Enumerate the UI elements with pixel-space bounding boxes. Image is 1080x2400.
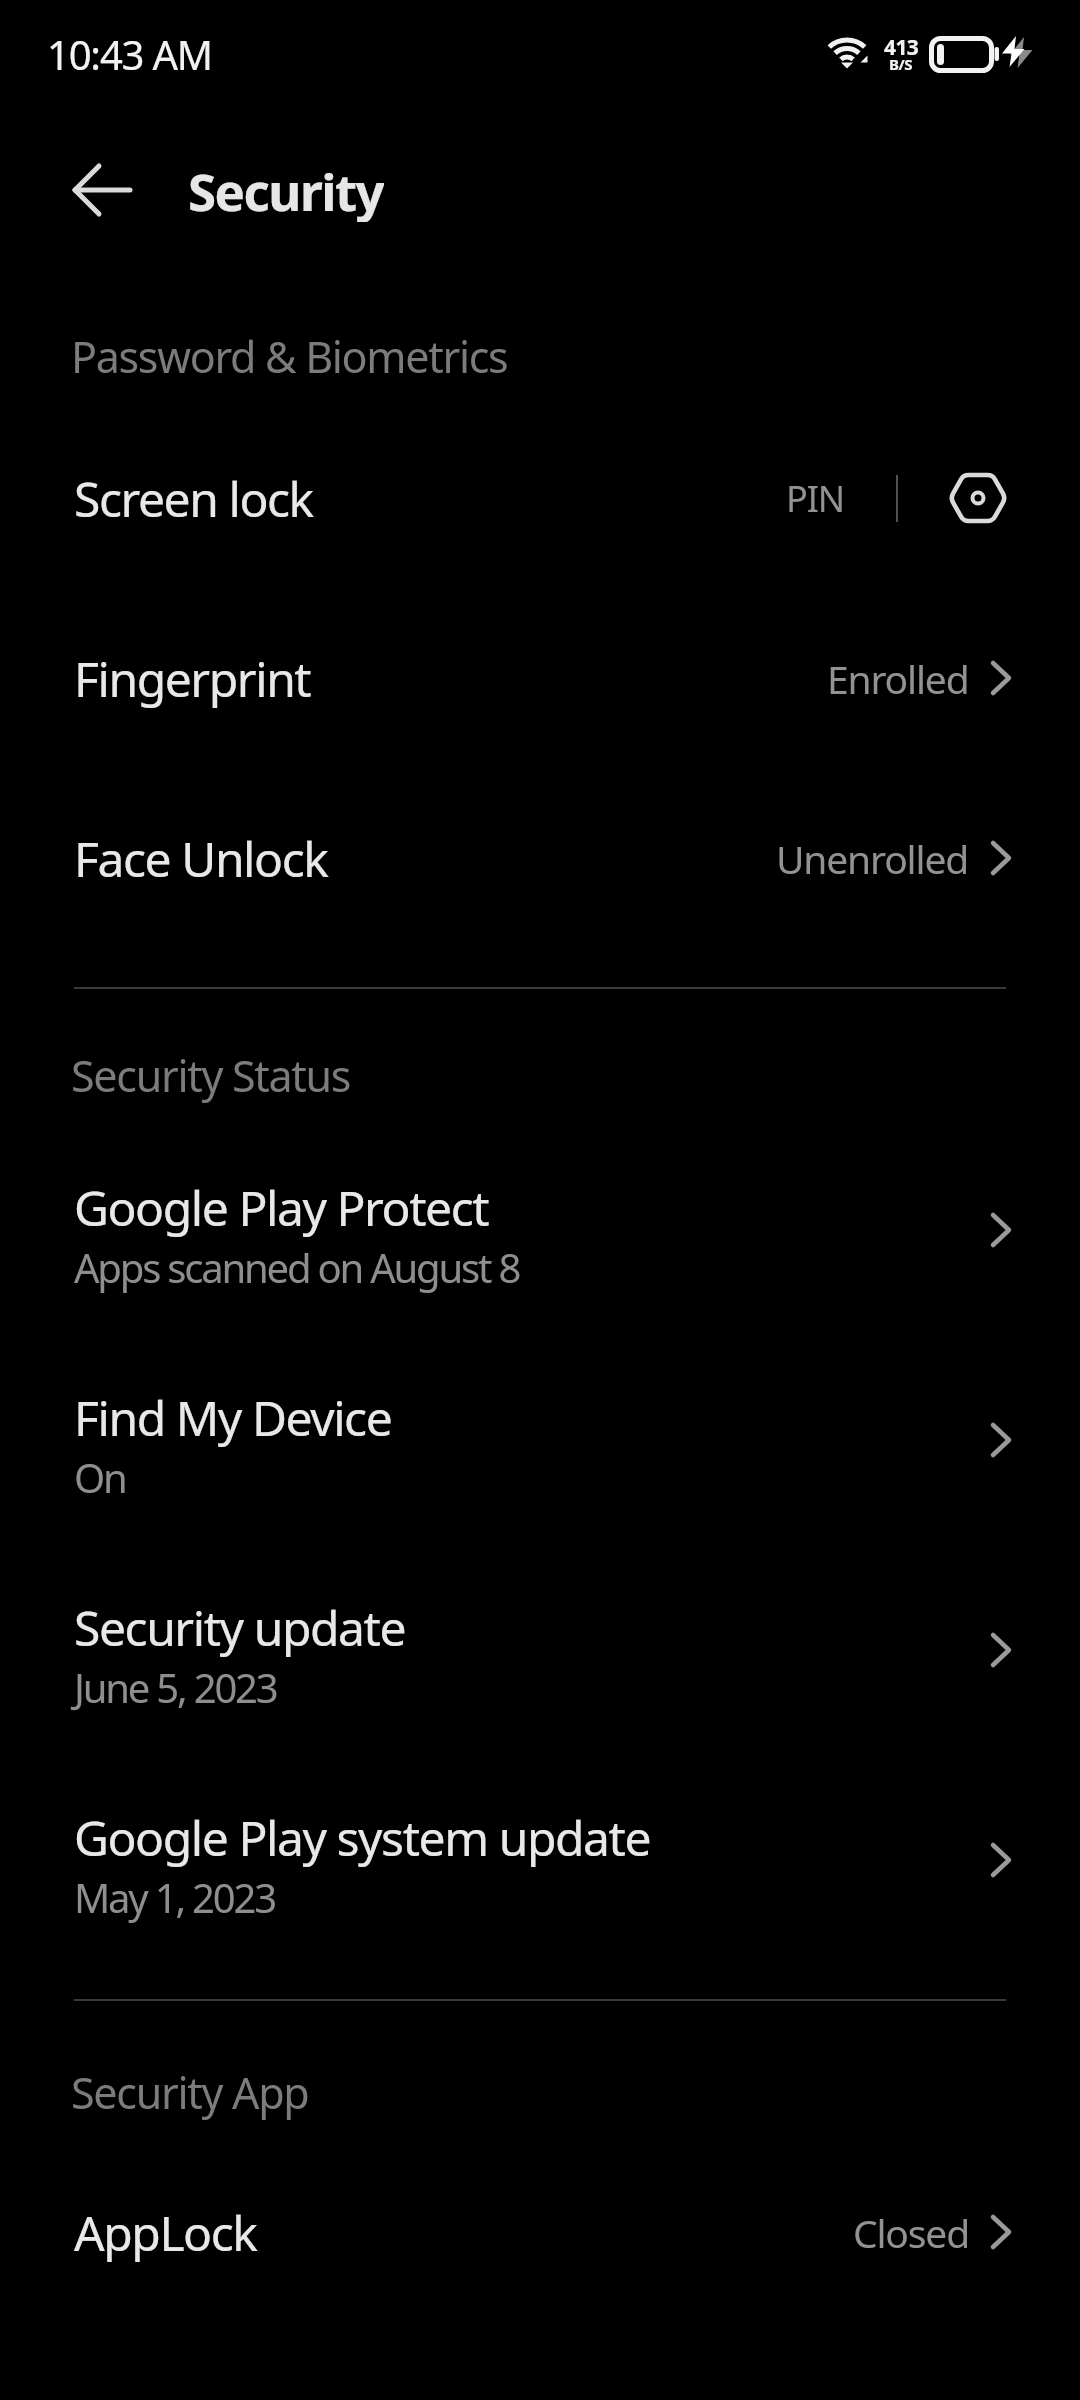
staticText: 413 xyxy=(884,33,919,58)
button[interactable]: Google Play Protect xyxy=(0,1139,1080,1329)
staticText: Unenrolled xyxy=(776,832,969,885)
staticText: Security update xyxy=(74,1595,406,1660)
staticText: Apps scanned on August 8 xyxy=(74,1240,520,1294)
staticText: Password & Biometrics xyxy=(71,327,508,386)
button[interactable]: Fingerprint xyxy=(0,603,1080,753)
staticText: PIN xyxy=(786,474,845,523)
staticText: AppLock xyxy=(74,2200,257,2265)
staticText: Security xyxy=(188,156,384,222)
staticText: May 1, 2023 xyxy=(74,1870,275,1924)
staticText: June 5, 2023 xyxy=(74,1660,277,1714)
staticText: Google Play system update xyxy=(74,1805,651,1870)
staticText: On xyxy=(74,1450,126,1504)
staticText: 10:43 AM xyxy=(47,27,212,75)
staticText: B/S xyxy=(889,54,913,74)
staticText: Security App xyxy=(71,2063,309,2122)
button[interactable]: Security update xyxy=(0,1559,1080,1749)
button[interactable]: AppLock xyxy=(0,2157,1080,2307)
staticText: Screen lock xyxy=(74,466,313,531)
button[interactable]: Google Play system update xyxy=(0,1769,1080,1959)
staticText: Enrolled xyxy=(827,652,969,705)
staticText: Find My Device xyxy=(74,1385,392,1450)
button[interactable]: Face Unlock xyxy=(0,783,1080,933)
button[interactable] xyxy=(72,163,134,219)
staticText: Face Unlock xyxy=(74,826,328,891)
staticText: Security Status xyxy=(71,1046,351,1105)
staticText: Google Play Protect xyxy=(74,1175,489,1240)
button[interactable]: Find My Device xyxy=(0,1349,1080,1539)
button[interactable]: Screen lock xyxy=(0,423,1080,573)
staticText: Closed xyxy=(853,2206,969,2259)
staticText: Fingerprint xyxy=(74,646,311,711)
